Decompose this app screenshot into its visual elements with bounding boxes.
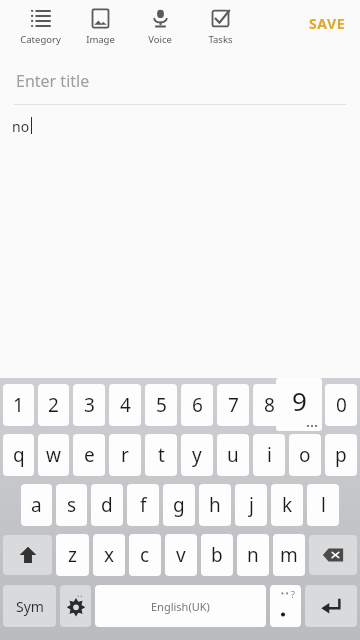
- button[interactable]: Enter title: [0, 58, 360, 104]
- staticText: j: [249, 492, 254, 518]
- staticText: i: [267, 442, 272, 468]
- button[interactable]: j: [235, 484, 267, 526]
- staticText: o: [299, 442, 311, 468]
- staticText: Voice: [148, 33, 172, 46]
- staticText: 9: [300, 392, 311, 418]
- button[interactable]: y: [181, 434, 213, 476]
- staticText: r: [121, 442, 129, 468]
- button[interactable]: t: [145, 434, 177, 476]
- button[interactable]: 8: [253, 384, 285, 426]
- button[interactable]: a: [21, 484, 52, 526]
- button[interactable]: n: [237, 534, 269, 576]
- button[interactable]: Shift: [3, 535, 52, 575]
- staticText: s: [67, 492, 77, 518]
- button[interactable]: 9: [289, 384, 321, 426]
- button[interactable]: 6: [181, 384, 213, 426]
- button[interactable]: x: [93, 534, 125, 576]
- staticText: k: [282, 492, 293, 518]
- staticText: v: [176, 542, 186, 568]
- button[interactable]: z: [56, 534, 89, 576]
- button[interactable]: Voice: [134, 4, 186, 48]
- button[interactable]: Enter: [305, 585, 357, 627]
- button[interactable]: p: [325, 434, 357, 476]
- button[interactable]: c: [129, 534, 161, 576]
- button[interactable]: v: [165, 534, 197, 576]
- staticText: g: [173, 492, 185, 518]
- button[interactable]: Backspace: [309, 535, 357, 575]
- staticText: b: [211, 542, 223, 568]
- button[interactable]: f: [127, 484, 159, 526]
- button[interactable]: 1: [3, 384, 34, 426]
- staticText: 3: [84, 392, 95, 418]
- staticText: no: [12, 117, 30, 136]
- staticText: l: [321, 492, 326, 518]
- button[interactable]: b: [201, 534, 233, 576]
- staticText: 9: [292, 383, 307, 418]
- staticText: f: [140, 492, 147, 518]
- staticText: d: [101, 492, 113, 518]
- button[interactable]: Category: [14, 4, 66, 48]
- button[interactable]: e: [73, 434, 105, 476]
- button[interactable]: i: [253, 434, 285, 476]
- button[interactable]: d: [91, 484, 123, 526]
- staticText: t: [158, 442, 165, 468]
- button[interactable]: k: [271, 484, 303, 526]
- staticText: 8: [264, 392, 275, 418]
- staticText: u: [227, 442, 239, 468]
- staticText: 5: [156, 392, 167, 418]
- button[interactable]: w: [38, 434, 69, 476]
- staticText: 0: [336, 392, 347, 418]
- button[interactable]: 2: [38, 384, 69, 426]
- staticText: Sym: [16, 597, 44, 616]
- button[interactable]: Image: [74, 4, 126, 48]
- button[interactable]: 3: [73, 384, 105, 426]
- staticText: Category: [20, 33, 61, 46]
- staticText: p: [335, 442, 347, 468]
- button[interactable]: Tasks: [194, 4, 246, 48]
- staticText: q: [13, 442, 25, 468]
- button[interactable]: l: [307, 484, 339, 526]
- staticText: y: [192, 442, 202, 468]
- button[interactable]: u: [217, 434, 249, 476]
- button[interactable]: m: [273, 534, 305, 576]
- staticText: z: [68, 542, 77, 568]
- button[interactable]: 7: [217, 384, 249, 426]
- staticText: e: [84, 442, 95, 468]
- staticText: n: [247, 542, 259, 568]
- staticText: 4: [120, 392, 131, 418]
- button[interactable]: SAVE: [301, 10, 354, 37]
- staticText: w: [46, 442, 61, 468]
- button[interactable]: g: [163, 484, 195, 526]
- button[interactable]: Sym: [3, 585, 56, 627]
- button[interactable]: no: [0, 105, 360, 378]
- staticText: Image: [86, 33, 115, 46]
- staticText: h: [209, 492, 221, 518]
- staticText: Tasks: [208, 33, 233, 46]
- staticText: 6: [192, 392, 203, 418]
- staticText: x: [104, 542, 115, 568]
- staticText: m: [280, 542, 298, 568]
- staticText: 2: [48, 392, 59, 418]
- button[interactable]: o: [289, 434, 321, 476]
- button[interactable]: h: [199, 484, 231, 526]
- staticText: a: [31, 492, 42, 518]
- staticText: Enter title: [16, 70, 90, 92]
- staticText: English(UK): [151, 599, 210, 614]
- button[interactable]: 4: [109, 384, 141, 426]
- button[interactable]: 0: [325, 384, 357, 426]
- staticText: ?: [291, 588, 295, 600]
- staticText: SAVE: [309, 14, 346, 33]
- button[interactable]: r: [109, 434, 141, 476]
- button[interactable]: q: [3, 434, 34, 476]
- button[interactable]: s: [56, 484, 87, 526]
- button[interactable]: English(UK): [95, 585, 266, 627]
- staticText: 7: [228, 392, 239, 418]
- button[interactable]: 5: [145, 384, 177, 426]
- button[interactable]: Period: [270, 585, 301, 627]
- button[interactable]: Settings: [60, 585, 91, 627]
- staticText: 1: [13, 392, 24, 418]
- staticText: c: [140, 542, 150, 568]
